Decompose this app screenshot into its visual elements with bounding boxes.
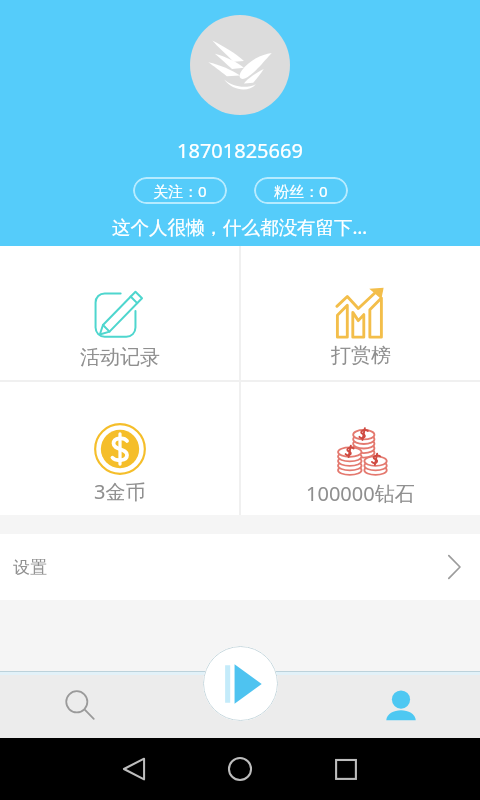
- staticText: 3金币: [94, 478, 146, 505]
- button[interactable]: 关注：0: [133, 177, 227, 204]
- button[interactable]: Recents: [293, 738, 399, 800]
- button[interactable]: Search: [0, 671, 160, 738]
- button[interactable]: Home: [187, 738, 293, 800]
- button[interactable]: 活动记录: [0, 246, 239, 380]
- button[interactable]: 100000钻石: [241, 382, 480, 515]
- staticText: 100000钻石: [306, 480, 415, 507]
- button[interactable]: Play: [203, 646, 278, 721]
- staticText: 18701825669: [177, 137, 303, 164]
- staticText: 活动记录: [80, 345, 160, 370]
- button[interactable]: 3金币: [0, 382, 239, 515]
- staticText: 粉丝：0: [274, 181, 328, 201]
- staticText: 打赏榜: [331, 343, 391, 368]
- button[interactable]: Back: [81, 738, 187, 800]
- button[interactable]: 粉丝：0: [254, 177, 348, 204]
- staticText: 这个人很懒，什么都没有留下…: [112, 214, 368, 239]
- button[interactable]: 打赏榜: [241, 246, 480, 380]
- staticText: 关注：0: [153, 181, 207, 201]
- button[interactable]: Profile: [320, 671, 480, 738]
- button[interactable]: Avatar: [190, 15, 290, 115]
- staticText: 设置: [13, 557, 47, 578]
- button[interactable]: 设置: [0, 534, 480, 600]
